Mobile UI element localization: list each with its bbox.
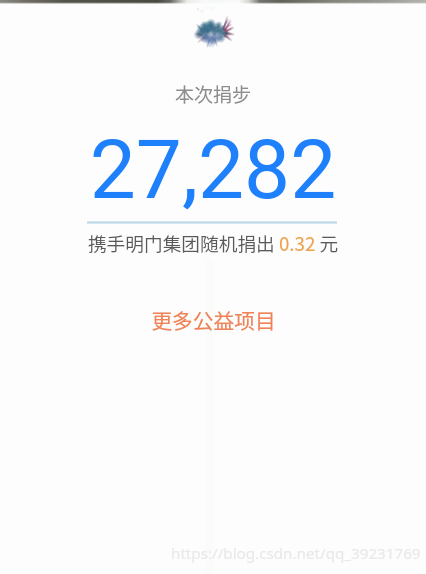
staticText: 本次捐步	[0, 80, 426, 108]
staticText: 27,282	[0, 122, 426, 218]
staticText: 携手明门集团随机捐出 0.32 元	[0, 229, 426, 256]
button[interactable]: 更多公益项目	[141, 302, 285, 338]
staticText: 更多公益项目	[151, 305, 276, 335]
staticText: https://blog.csdn.net/qq_39231769	[171, 543, 421, 564]
